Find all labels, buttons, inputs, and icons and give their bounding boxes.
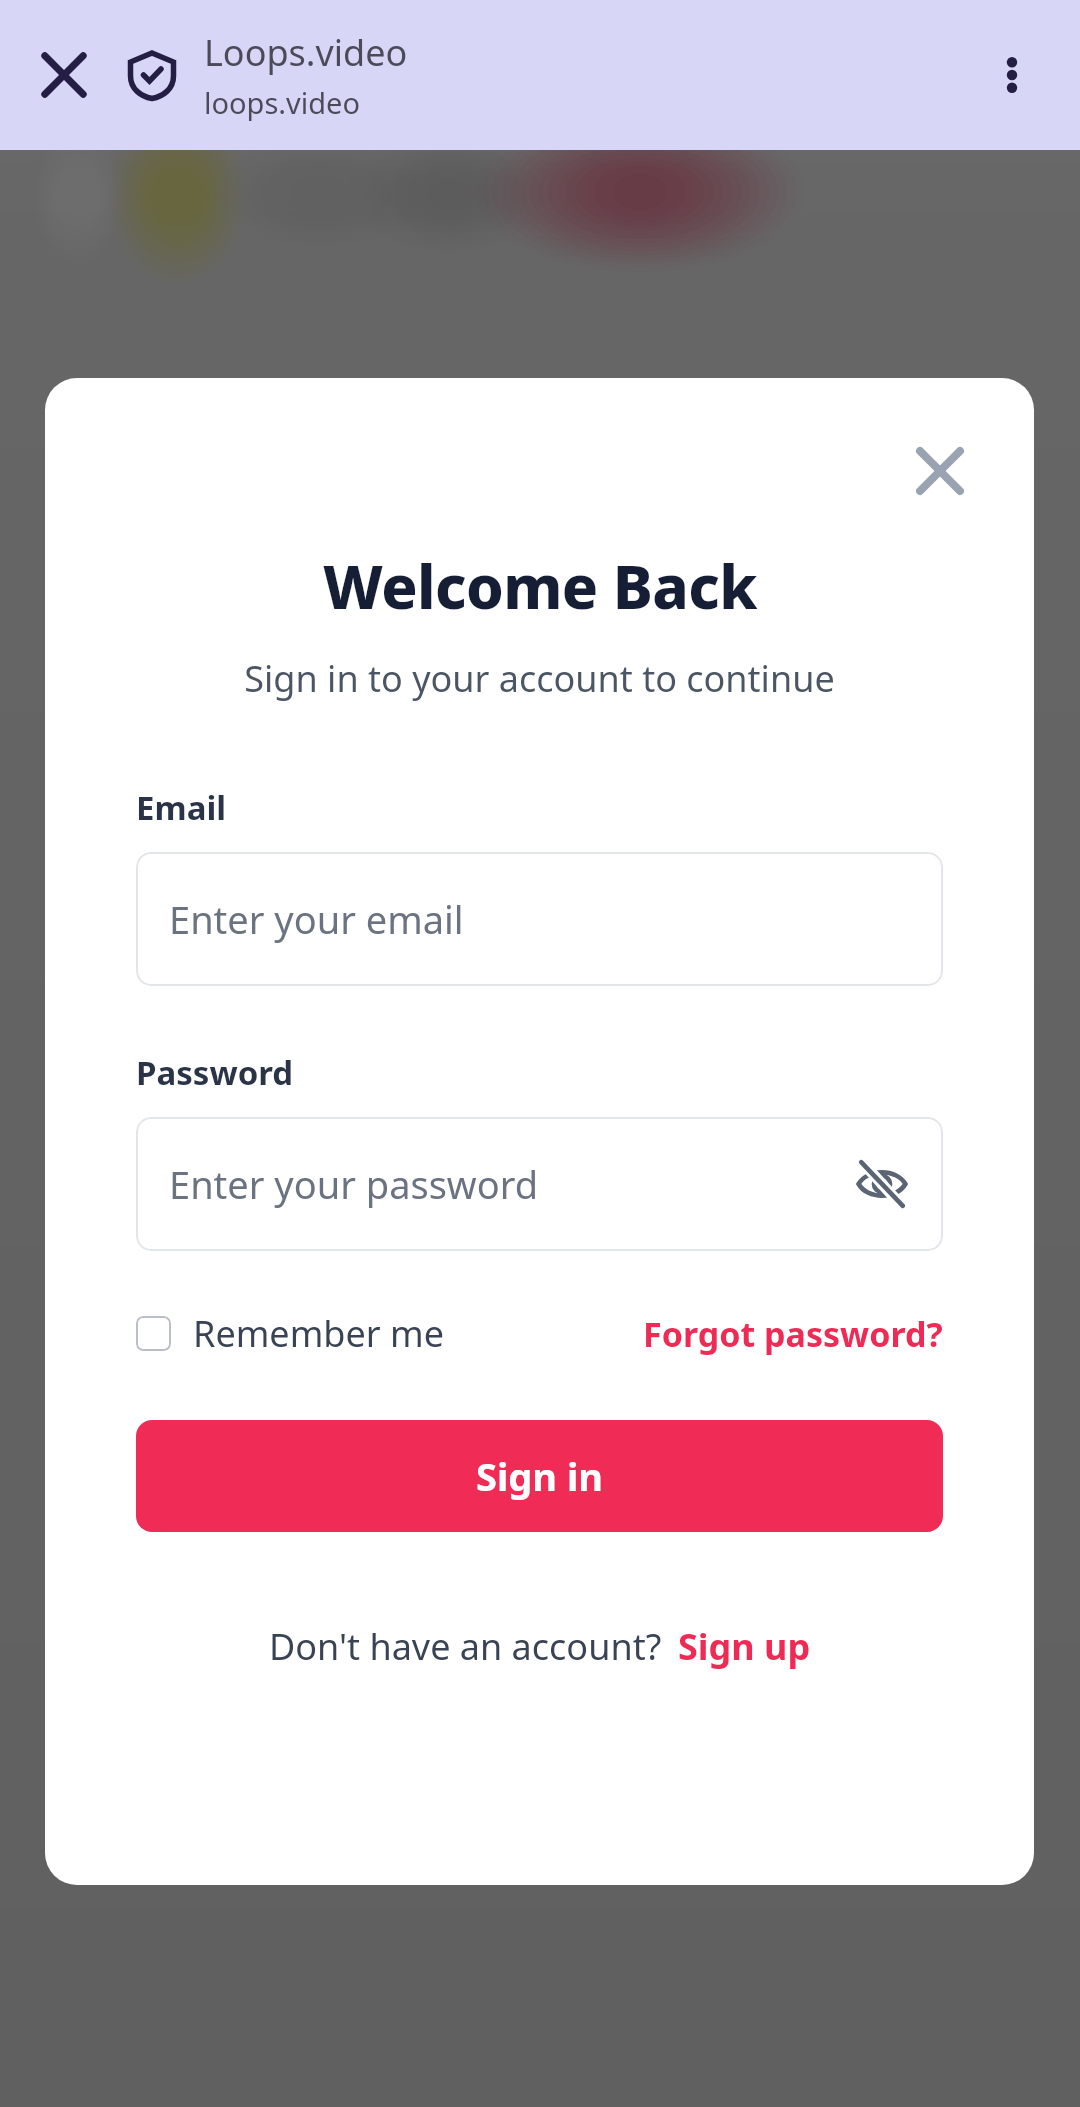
button[interactable]: Close tab <box>20 31 108 119</box>
button[interactable]: Show password <box>844 1146 920 1222</box>
staticText: Enter your password <box>169 1158 539 1210</box>
staticText: Remember me <box>193 1309 444 1358</box>
button[interactable]: Sign up <box>678 1622 811 1671</box>
staticText: Sign up <box>678 1622 811 1671</box>
staticText: Sign in <box>476 1450 603 1502</box>
button[interactable]: More options <box>968 31 1056 119</box>
staticText: Welcome Back <box>323 545 757 627</box>
staticText: Enter your email <box>169 893 464 945</box>
staticText: Don't have an account? <box>269 1622 662 1671</box>
button[interactable]: Enter your email <box>136 852 943 986</box>
staticText: Sign in to your account to continue <box>244 654 835 703</box>
staticText: Forgot password? <box>643 1311 943 1357</box>
staticText: Email <box>136 785 227 830</box>
staticText: loops.video <box>204 83 361 122</box>
button[interactable]: Sign in <box>136 1420 943 1532</box>
button[interactable]: Enter your password <box>136 1117 943 1251</box>
button[interactable]: Remember me <box>136 1303 444 1364</box>
staticText: Loops.video <box>204 28 408 77</box>
staticText: Password <box>136 1050 294 1095</box>
button[interactable]: Site information <box>108 31 196 119</box>
button[interactable]: Close dialog <box>893 424 987 518</box>
button[interactable]: Forgot password? <box>643 1305 943 1363</box>
